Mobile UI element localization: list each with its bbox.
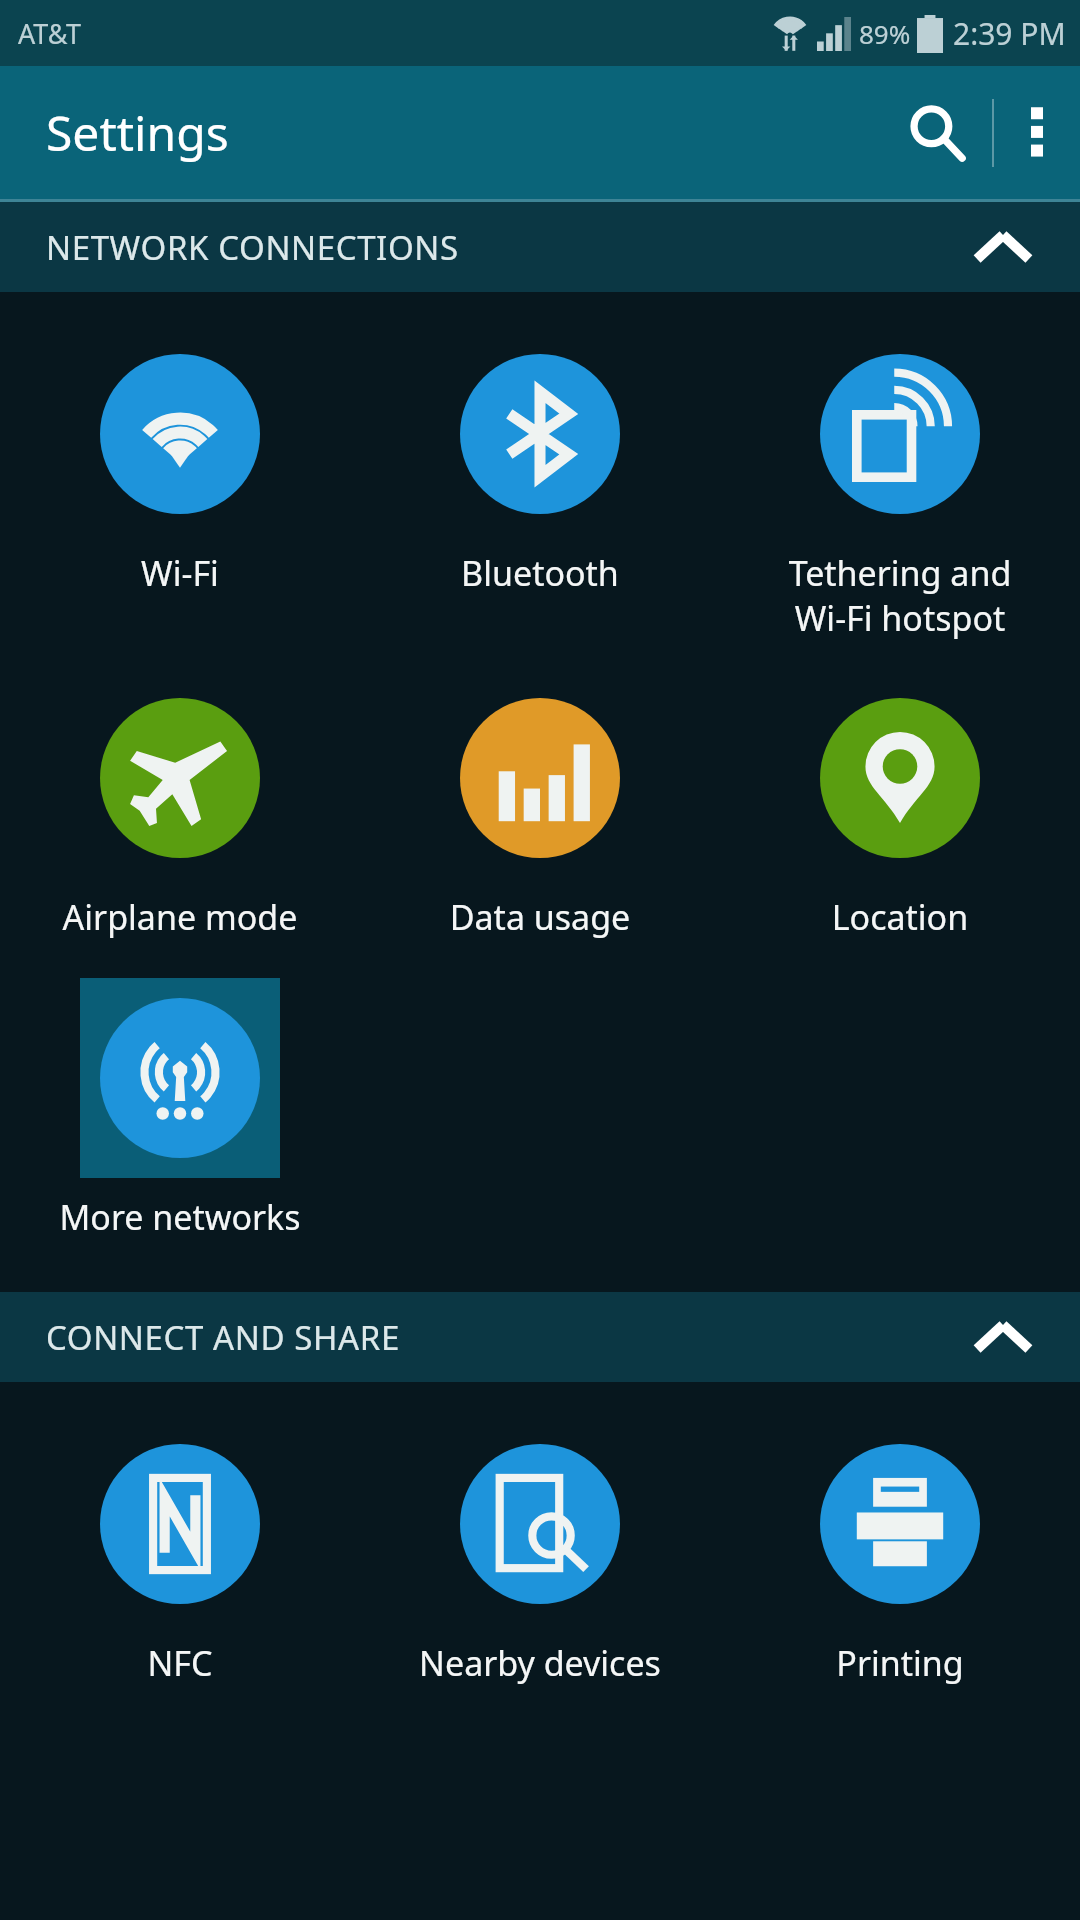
button[interactable]: More networks	[0, 978, 360, 1240]
staticText: CONNECT AND SHARE	[46, 1315, 400, 1360]
button[interactable]: CONNECT AND SHARE	[0, 1292, 1080, 1382]
staticText: NETWORK CONNECTIONS	[46, 225, 459, 270]
staticText: Airplane mode	[6, 894, 354, 940]
button[interactable]: NFC	[0, 1424, 360, 1686]
button[interactable]: NETWORK CONNECTIONS	[0, 202, 1080, 292]
button[interactable]: Printing	[720, 1424, 1080, 1686]
button[interactable]: Nearby devices	[360, 1424, 720, 1686]
staticText: 89%	[859, 16, 911, 51]
button[interactable]: Location	[720, 678, 1080, 940]
button[interactable]: Search	[882, 66, 992, 199]
staticText: Tethering and Wi-Fi hotspot	[726, 550, 1074, 640]
button[interactable]: Airplane mode	[0, 678, 360, 940]
staticText: Bluetooth	[366, 550, 714, 596]
staticText: Printing	[726, 1640, 1074, 1686]
staticText: Wi-Fi	[6, 550, 354, 596]
staticText: Settings	[46, 100, 229, 165]
staticText: More networks	[6, 1194, 354, 1240]
staticText: Data usage	[366, 894, 714, 940]
staticText: AT&T	[18, 15, 81, 52]
staticText: NFC	[6, 1640, 354, 1686]
staticText: Location	[726, 894, 1074, 940]
button[interactable]: More options	[994, 66, 1080, 199]
button[interactable]: Bluetooth	[360, 334, 720, 596]
button[interactable]: Wi-Fi	[0, 334, 360, 596]
button[interactable]: Data usage	[360, 678, 720, 940]
staticText: Nearby devices	[366, 1640, 714, 1686]
button[interactable]: Tethering and Wi-Fi hotspot	[720, 334, 1080, 640]
staticText: 2:39 PM	[953, 13, 1066, 54]
